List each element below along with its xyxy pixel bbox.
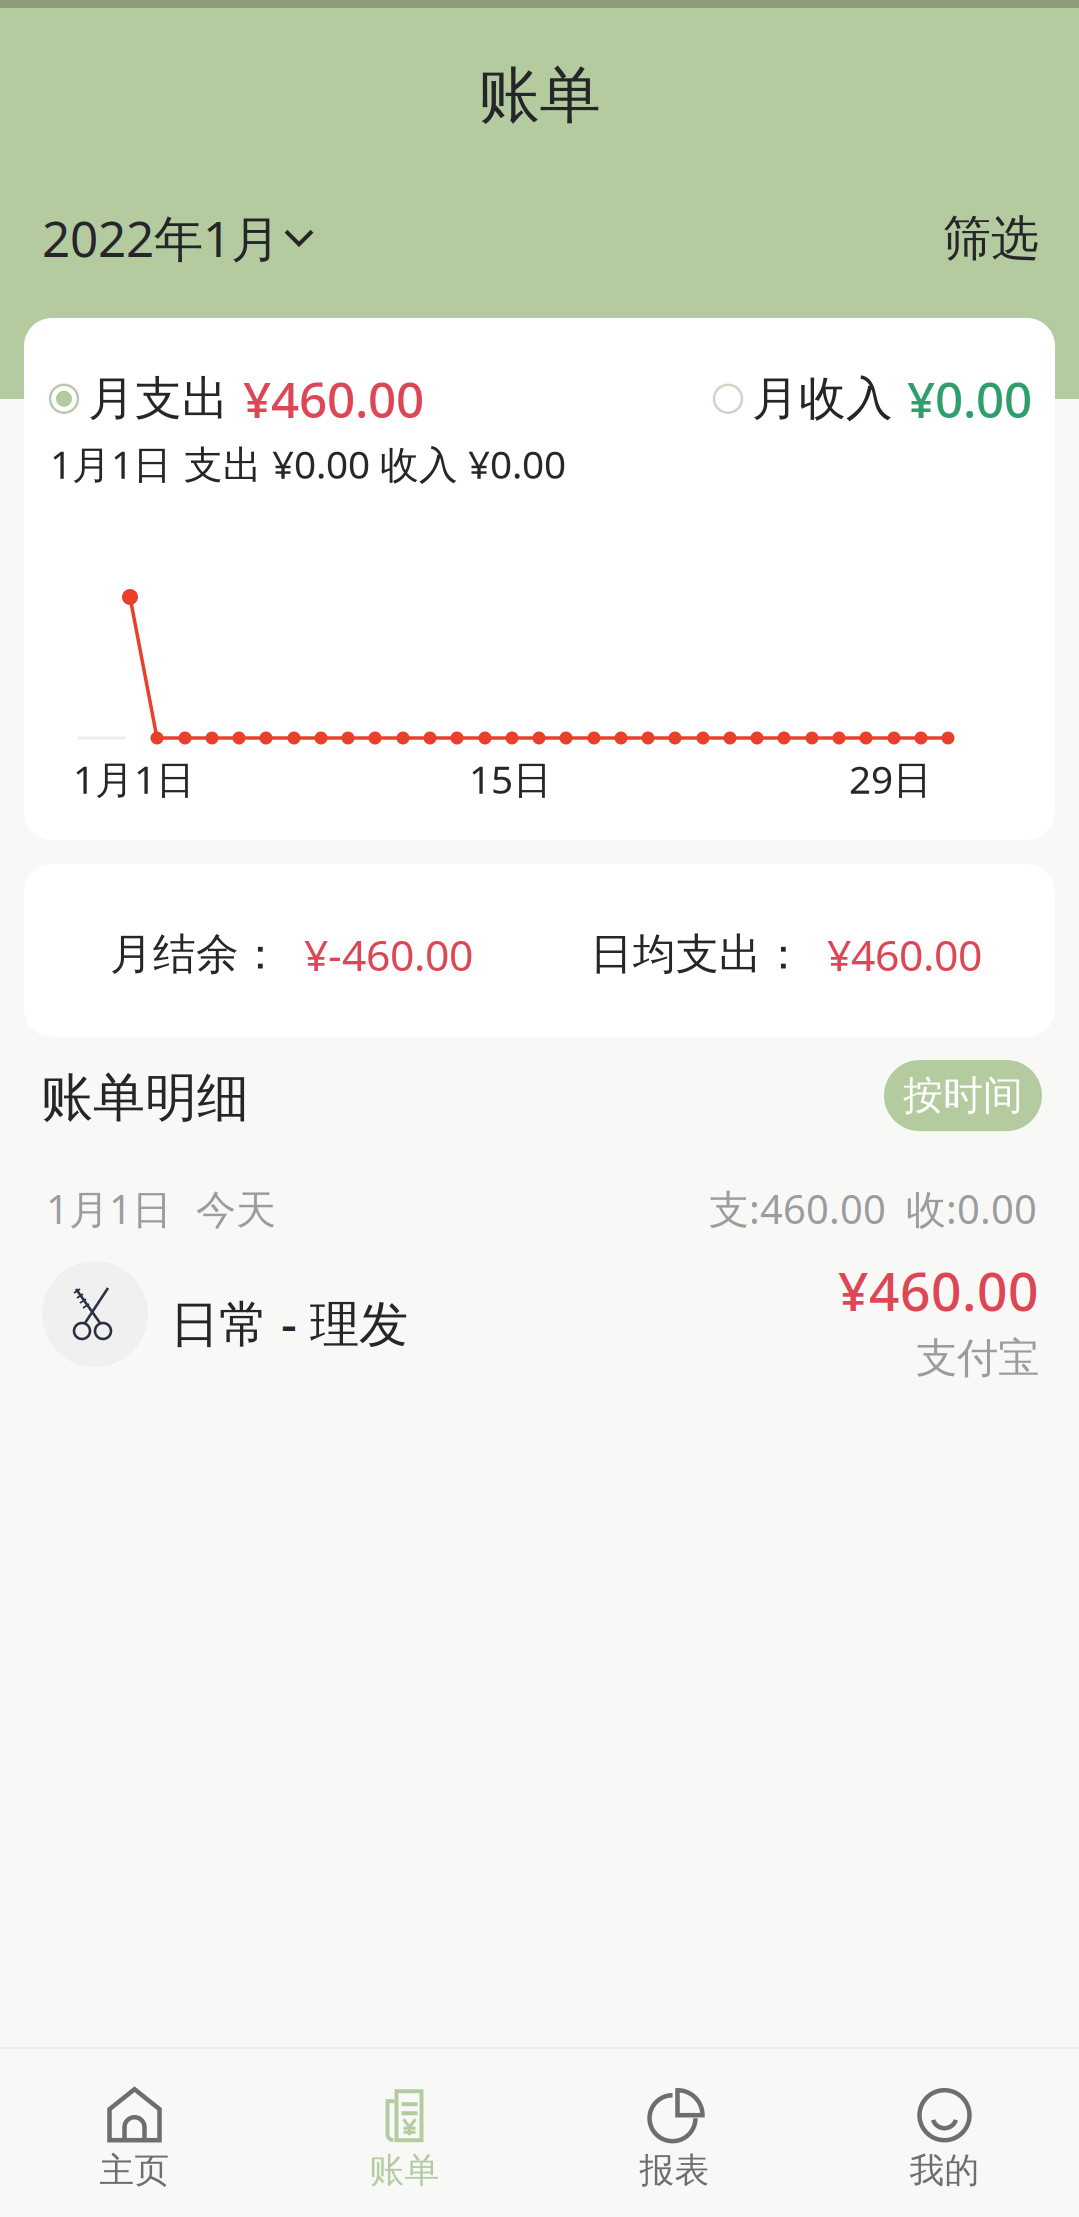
staticText: 账单明细 [41,1066,249,1130]
staticText: ¥0.00 [907,366,1032,431]
staticText: 报表 [639,2149,709,2192]
staticText: 支:460.00 收:0.00 [709,1182,1037,1235]
staticText: 账单 [369,2149,439,2192]
staticText: 按时间 [903,1071,1023,1120]
staticText: ¥460.00 [838,1255,1039,1326]
staticText: 主页 [99,2149,169,2192]
staticText: 日常 - 理发 [170,1290,408,1355]
staticText: 15日 [469,753,552,804]
staticText: 月支出 [88,370,243,427]
button[interactable]: 账单 [269,2054,539,2217]
staticText: ¥-460.00 [282,926,473,983]
button[interactable]: 2022年1月 [36,193,320,282]
staticText: 2022年1月 [42,205,280,270]
button[interactable]: 日常 - 理发 [0,1238,1079,1398]
button[interactable]: 主页 [0,2054,269,2217]
staticText: 支付宝 [916,1333,1039,1384]
staticText: 日均支出： [590,928,805,980]
button[interactable]: 按时间 [884,1060,1042,1131]
staticText: 我的 [909,2149,979,2192]
staticText: 1月1日 [73,753,195,804]
staticText: 1月1日 今天 [46,1182,276,1235]
button[interactable]: 筛选 [937,197,1045,280]
staticText: 1月1日 支出 ¥0.00 收入 ¥0.00 [50,438,566,489]
staticText: ¥460.00 [243,366,424,431]
staticText: ¥460.00 [805,926,982,983]
staticText: 月结余： [110,928,282,980]
button[interactable]: 我的 [809,2054,1079,2217]
staticText: 29日 [849,753,932,804]
staticText: 月收入 [752,370,907,427]
button[interactable]: 报表 [539,2054,809,2217]
staticText: 筛选 [943,209,1039,268]
staticText: 账单 [478,58,600,133]
